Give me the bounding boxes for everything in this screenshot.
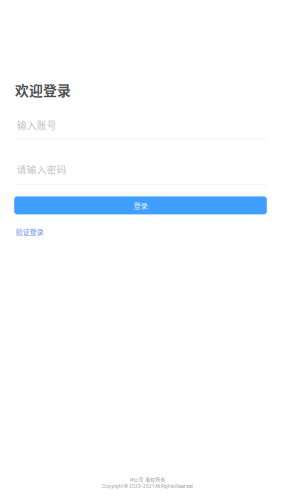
button[interactable]: 验证登录	[14, 226, 43, 237]
staticText: 欢迎登录	[15, 80, 71, 100]
staticText: 验证登录	[15, 226, 43, 237]
staticText: 登录	[133, 200, 147, 211]
button[interactable]: 登录	[14, 196, 267, 214]
staticText: 输入账号	[17, 118, 57, 132]
staticText: Copyright © 2020-2021 All Rights Reserve…	[102, 484, 193, 489]
staticText: 请输入密码	[17, 162, 67, 176]
staticText: xx公司 版权所有	[130, 476, 166, 483]
